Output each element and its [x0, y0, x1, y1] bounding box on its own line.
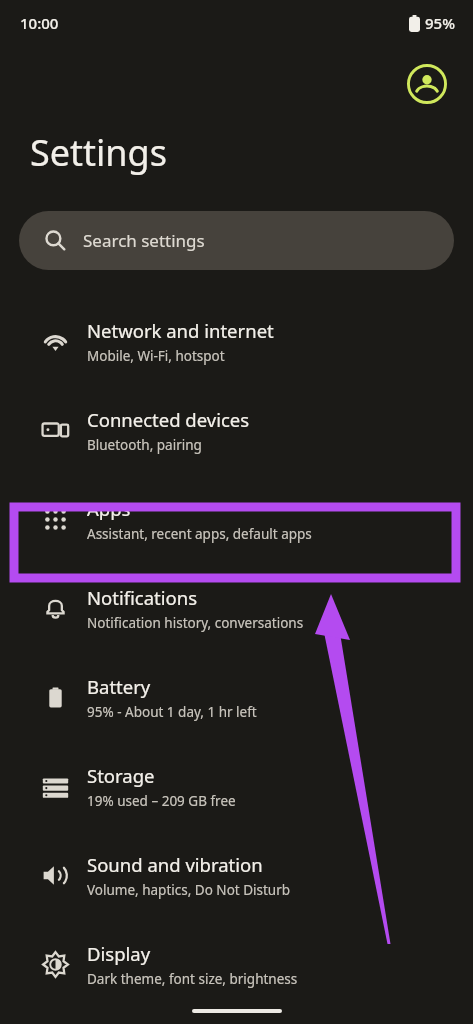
staticText: Sound and vibration	[87, 852, 263, 877]
staticText: 19% used – 209 GB free	[87, 792, 236, 810]
staticText: 95%	[425, 13, 455, 33]
button[interactable]: Apps	[0, 475, 473, 564]
button[interactable]: Display	[0, 920, 473, 1009]
button[interactable]: Notifications	[0, 564, 473, 653]
staticText: Network and internet	[87, 318, 274, 343]
button[interactable]: Storage	[0, 742, 473, 831]
staticText: Assistant, recent apps, default apps	[87, 525, 312, 543]
staticText: Apps	[87, 496, 131, 521]
button[interactable]: Network and internet	[0, 297, 473, 386]
staticText: Connected devices	[87, 407, 250, 432]
staticText: 10:00	[20, 13, 59, 33]
button[interactable]: Search settings	[19, 211, 454, 270]
staticText: Settings	[30, 128, 167, 177]
staticText: Mobile, Wi-Fi, hotspot	[87, 347, 225, 365]
staticText: Notification history, conversations	[87, 614, 304, 632]
staticText: Storage	[87, 763, 155, 788]
staticText: Notifications	[87, 585, 198, 610]
staticText: Display	[87, 941, 151, 966]
staticText: Dark theme, font size, brightness	[87, 970, 298, 988]
staticText: Volume, haptics, Do Not Disturb	[87, 881, 291, 899]
button[interactable]: Account	[405, 62, 449, 106]
button[interactable]: Sound and vibration	[0, 831, 473, 920]
button[interactable]: Battery	[0, 653, 473, 742]
button[interactable]: Connected devices	[0, 386, 473, 475]
staticText: Bluetooth, pairing	[87, 436, 202, 454]
staticText: Search settings	[83, 229, 205, 252]
staticText: 95% - About 1 day, 1 hr left	[87, 703, 257, 721]
staticText: Battery	[87, 674, 151, 699]
